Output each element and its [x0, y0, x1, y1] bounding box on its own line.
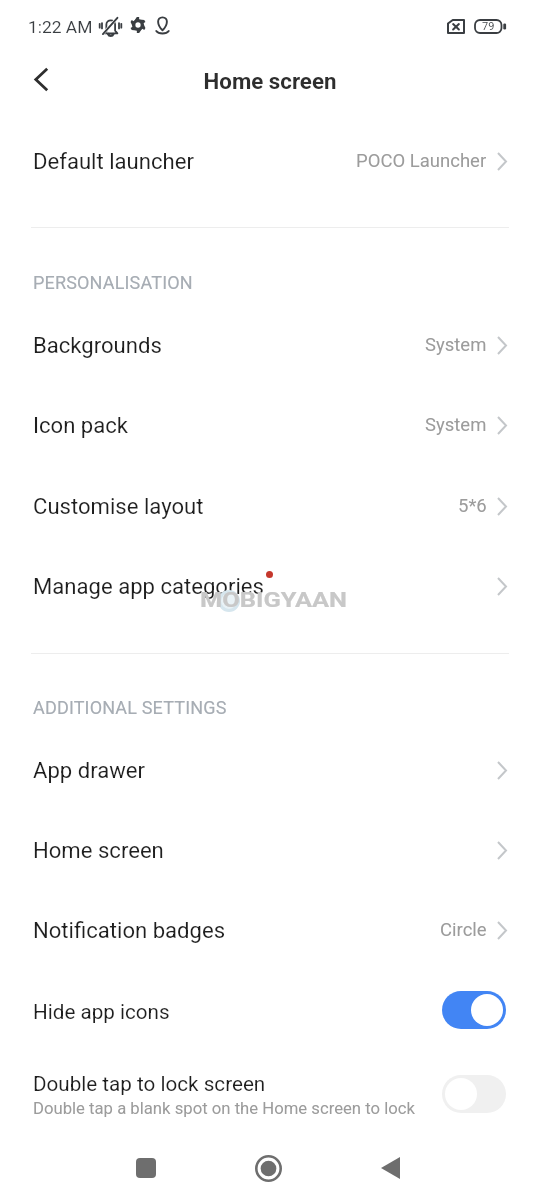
button[interactable]: Recents	[112, 1136, 180, 1200]
staticText: ADDITIONAL SETTINGS	[33, 697, 227, 718]
staticText: POCO Launcher	[356, 150, 487, 172]
staticText: Default launcher	[33, 148, 194, 174]
button[interactable]: Backgrounds	[0, 305, 540, 385]
staticText: App drawer	[33, 757, 146, 783]
button[interactable]: Hide app icons	[0, 972, 540, 1052]
button[interactable]: Home screen	[0, 810, 540, 890]
staticText: Double tap a blank spot on the Home scre…	[33, 1099, 415, 1119]
staticText: Home screen	[0, 68, 540, 94]
staticText: Double tap to lock screen	[33, 1072, 266, 1096]
staticText: System	[425, 334, 487, 356]
staticText: Manage app categories	[33, 573, 264, 599]
staticText: Notification badges	[33, 917, 226, 943]
staticText: 5*6	[458, 495, 487, 517]
button[interactable]: Customise layout	[0, 466, 540, 546]
button[interactable]: Back	[356, 1136, 424, 1200]
staticText: Customise layout	[33, 493, 204, 519]
button[interactable]: Home	[234, 1136, 302, 1200]
button[interactable]: Back	[16, 57, 62, 107]
staticText: PERSONALISATION	[33, 272, 193, 293]
staticText: Circle	[440, 919, 487, 941]
button[interactable]: Default launcher	[0, 121, 540, 201]
staticText: MOBIGYAAN	[200, 588, 348, 612]
staticText: System	[425, 414, 487, 436]
button[interactable]: App drawer	[0, 730, 540, 810]
staticText: 1:22 AM	[28, 17, 93, 37]
button[interactable]: Manage app categories	[0, 546, 540, 626]
staticText: 79	[482, 20, 495, 33]
staticText: Home screen	[33, 837, 164, 863]
staticText: Icon pack	[33, 412, 129, 438]
button[interactable]: Icon pack	[0, 385, 540, 465]
button[interactable]: Notification badges	[0, 890, 540, 970]
button[interactable]: Double tap to lock screen	[0, 1055, 540, 1135]
staticText: Hide app icons	[33, 1000, 170, 1024]
staticText: Backgrounds	[33, 332, 162, 358]
